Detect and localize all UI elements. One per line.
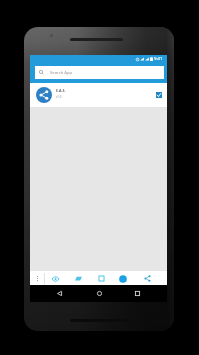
staticText: E.A.S. — [56, 88, 66, 93]
button[interactable]: Selected — [156, 92, 162, 98]
button[interactable]: Visibility — [48, 271, 62, 286]
button[interactable]: Share — [140, 271, 154, 286]
button[interactable]: More options — [30, 271, 44, 286]
button[interactable]: Back — [53, 287, 65, 299]
staticText: 9:41 — [154, 56, 163, 62]
button[interactable]: E.A.S. — [30, 83, 167, 107]
button[interactable]: Layers — [71, 271, 85, 286]
staticText: v1.0 — [56, 95, 62, 99]
button[interactable]: Search App — [35, 66, 164, 79]
button[interactable]: Record — [116, 271, 130, 286]
button[interactable]: Recents — [131, 287, 143, 299]
staticText: Search App — [50, 70, 73, 76]
button[interactable]: Crop — [94, 271, 108, 286]
button[interactable]: Home — [93, 287, 105, 299]
